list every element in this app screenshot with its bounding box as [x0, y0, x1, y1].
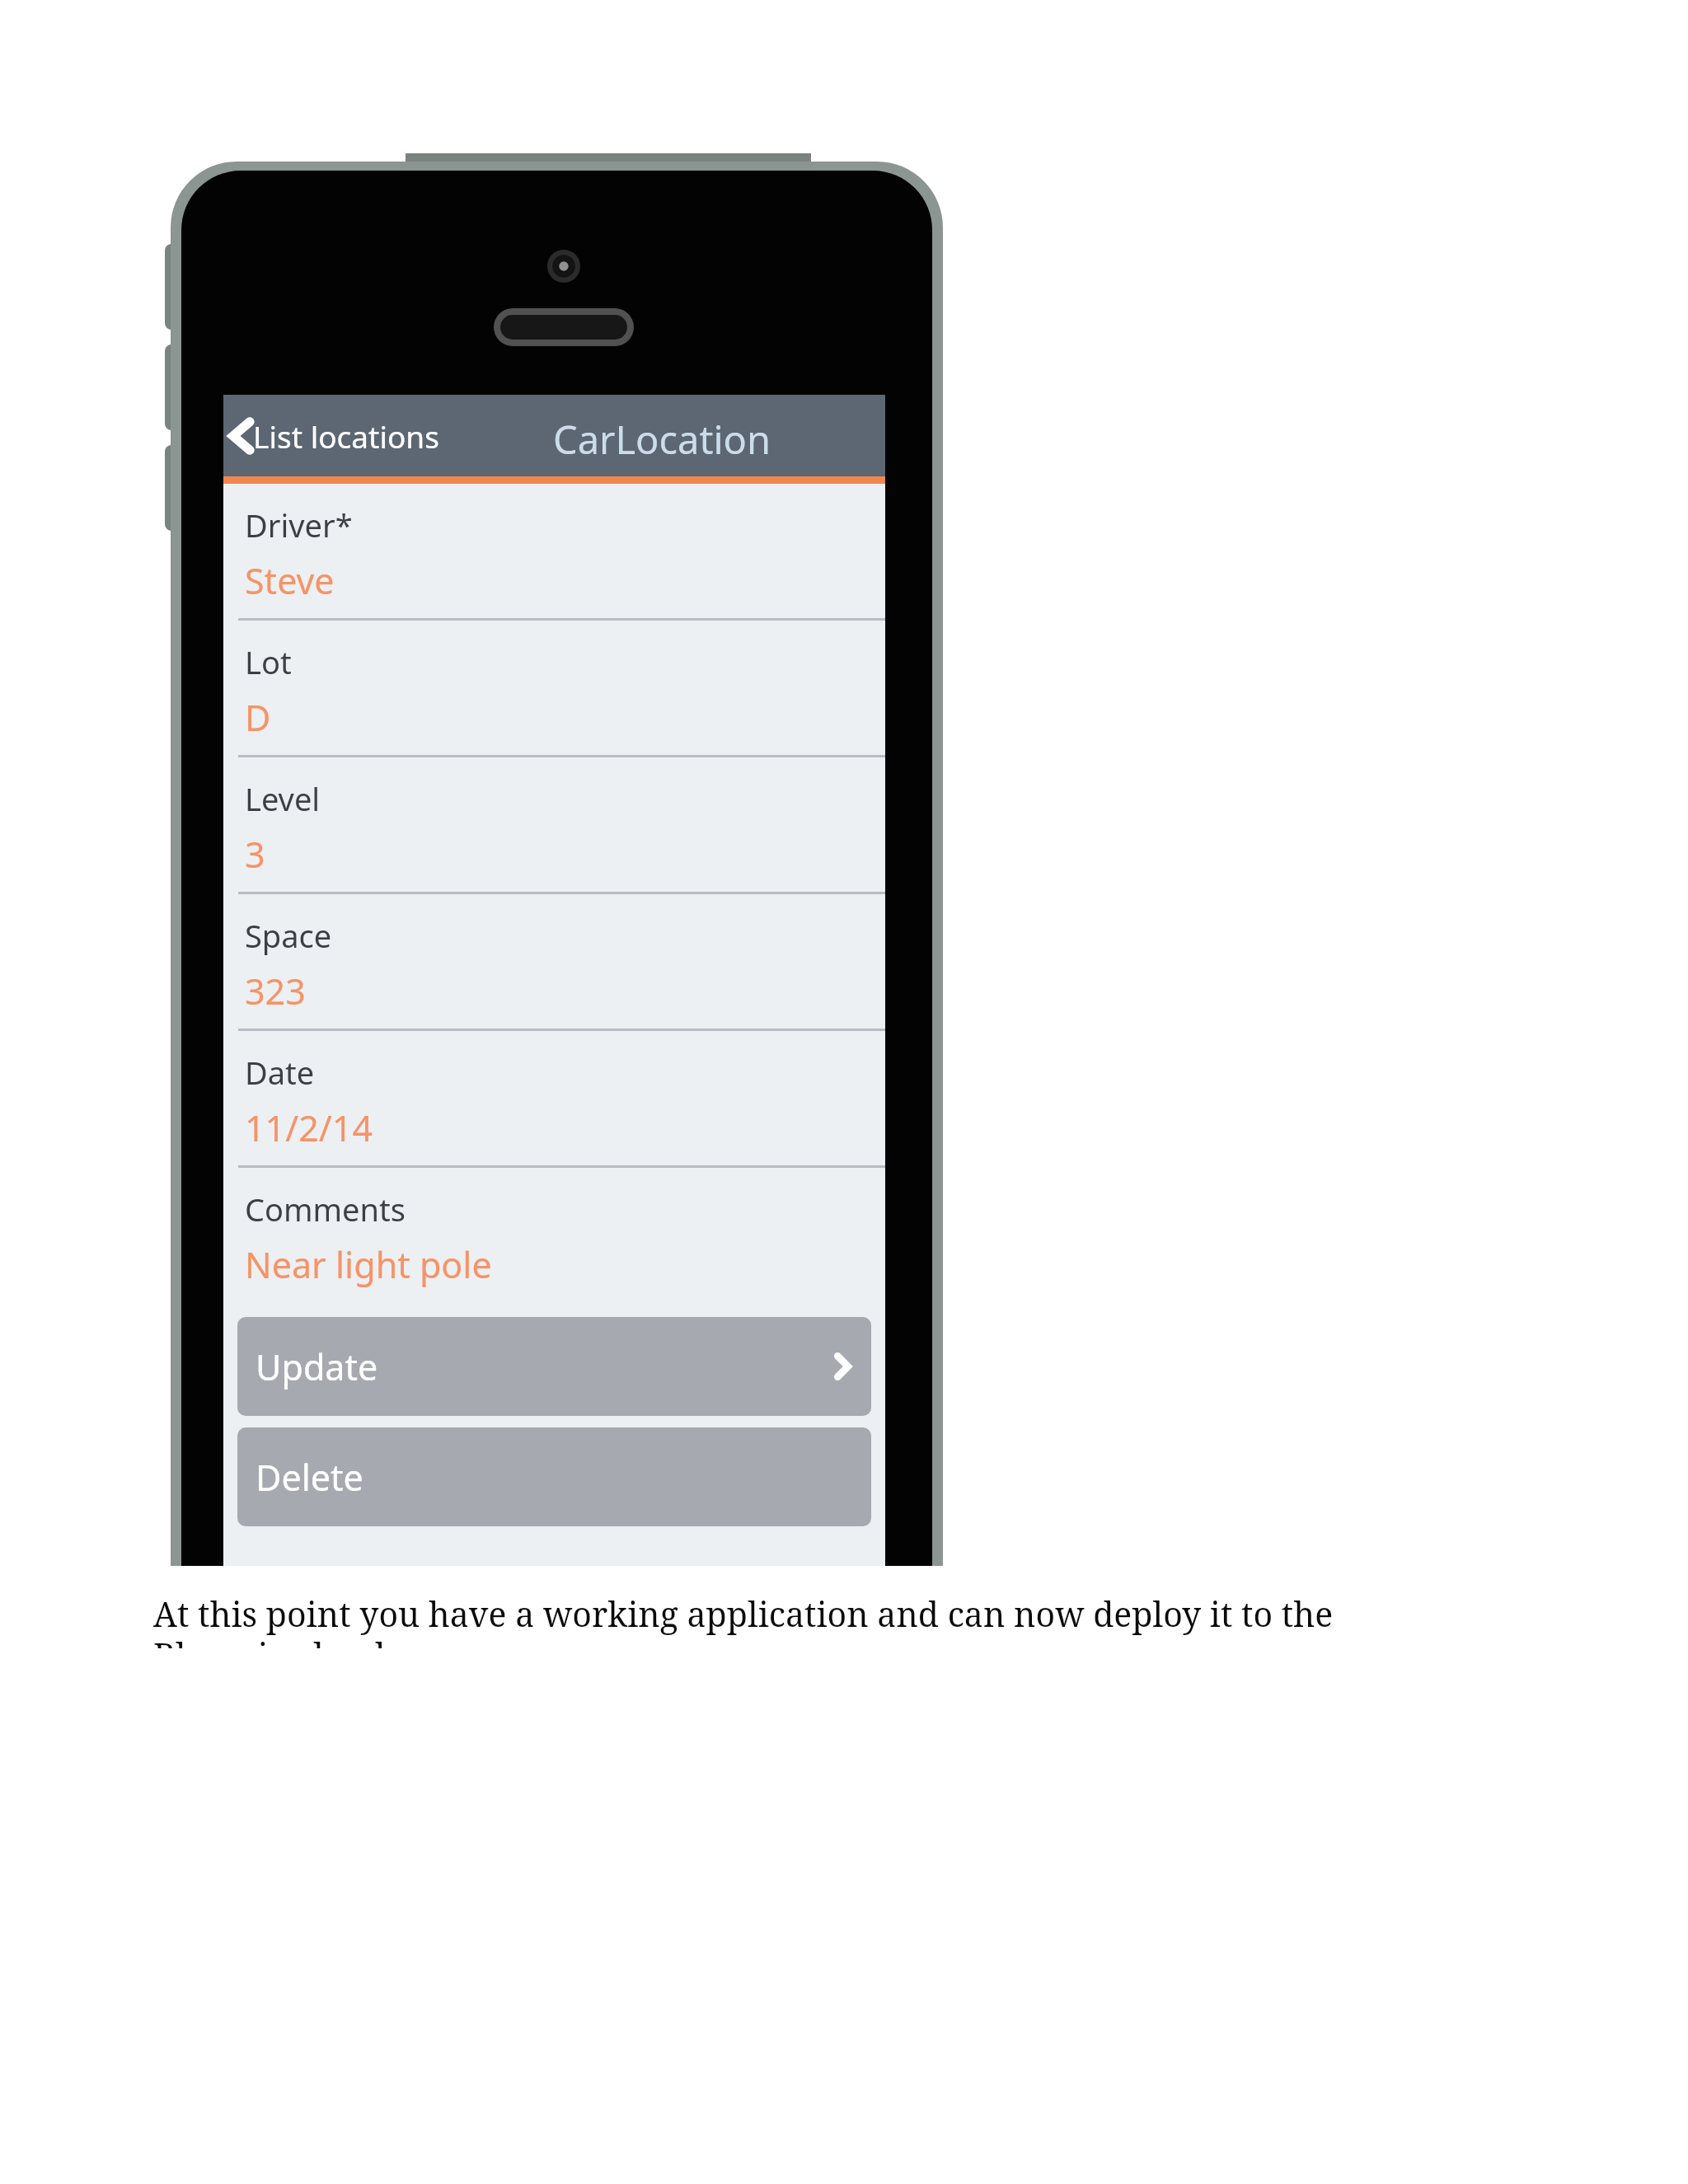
other: Open [835, 1354, 850, 1379]
staticText: Date [245, 1051, 315, 1094]
button[interactable]: Date [223, 1031, 885, 1168]
staticText: Near light pole [245, 1240, 492, 1289]
staticText: List locations [253, 415, 439, 457]
button[interactable]: List locations [223, 395, 452, 476]
button[interactable]: Lot [223, 621, 885, 757]
staticText: 11/2/14 [245, 1104, 373, 1152]
button[interactable]: Level [223, 757, 885, 894]
staticText: CarLocation [553, 413, 771, 466]
staticText: Level [245, 777, 321, 820]
button[interactable]: Comments [223, 1168, 885, 1302]
button[interactable]: Delete [237, 1427, 871, 1526]
staticText: At this point you have a working applica… [153, 1591, 1472, 1648]
staticText: 3 [245, 830, 265, 879]
staticText: Space [245, 914, 332, 957]
staticText: D [245, 693, 271, 742]
button[interactable]: Update [237, 1317, 871, 1416]
staticText: Delete [256, 1453, 363, 1502]
staticText: Lot [245, 640, 292, 683]
button[interactable]: Driver* [223, 484, 885, 621]
staticText: Driver* [245, 504, 353, 546]
staticText: Steve [245, 556, 335, 605]
staticText: Comments [245, 1188, 406, 1230]
button[interactable]: Space [223, 894, 885, 1031]
staticText: Update [256, 1343, 378, 1391]
staticText: 323 [245, 967, 306, 1015]
